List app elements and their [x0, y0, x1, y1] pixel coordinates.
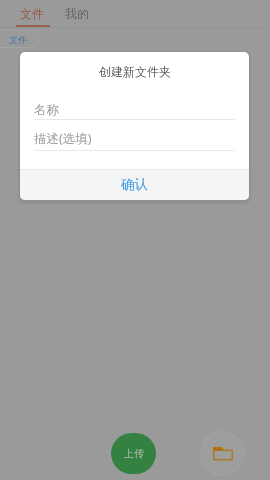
button[interactable]: 我的	[63, 0, 90, 28]
staticText: 创建新文件夹	[99, 64, 171, 79]
staticText: 描述(选填)	[34, 130, 92, 147]
button[interactable]: 文件	[0, 0, 63, 28]
button[interactable]: 上传	[111, 433, 156, 474]
button[interactable]: 确认	[20, 169, 249, 200]
staticText: 上传	[124, 447, 144, 460]
button[interactable]: 文件	[0, 30, 42, 48]
staticText: 我的	[65, 6, 89, 21]
staticText: 名称	[34, 102, 59, 118]
staticText: 文件	[20, 6, 44, 21]
staticText: 文件	[9, 34, 27, 45]
staticText: 确认	[121, 176, 148, 193]
button[interactable]: New folder	[200, 431, 245, 476]
